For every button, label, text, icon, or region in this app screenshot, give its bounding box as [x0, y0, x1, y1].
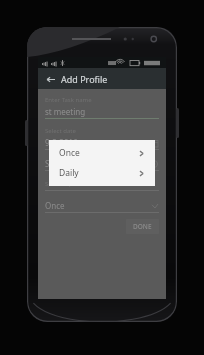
staticText: Once: [45, 200, 65, 211]
staticText: Enter Task name: [45, 96, 92, 104]
staticText: st meeting: [45, 106, 86, 117]
staticText: Select repeat: [45, 180, 82, 188]
button[interactable]: Daily: [49, 163, 155, 183]
button[interactable]: Back: [43, 72, 57, 86]
button[interactable]: DONE: [126, 219, 159, 234]
staticText: 9-2-2016: [45, 137, 78, 148]
staticText: Daily: [59, 167, 79, 179]
staticText: Once: [59, 147, 80, 159]
button[interactable]: Once: [49, 143, 155, 163]
staticText: DONE: [133, 222, 152, 231]
button[interactable]: Pick time: [148, 158, 159, 169]
staticText: Set time: [45, 158, 76, 169]
staticText: Select date: [45, 127, 76, 135]
button[interactable]: Pick date: [148, 137, 159, 148]
staticText: Add Profile: [61, 73, 108, 85]
